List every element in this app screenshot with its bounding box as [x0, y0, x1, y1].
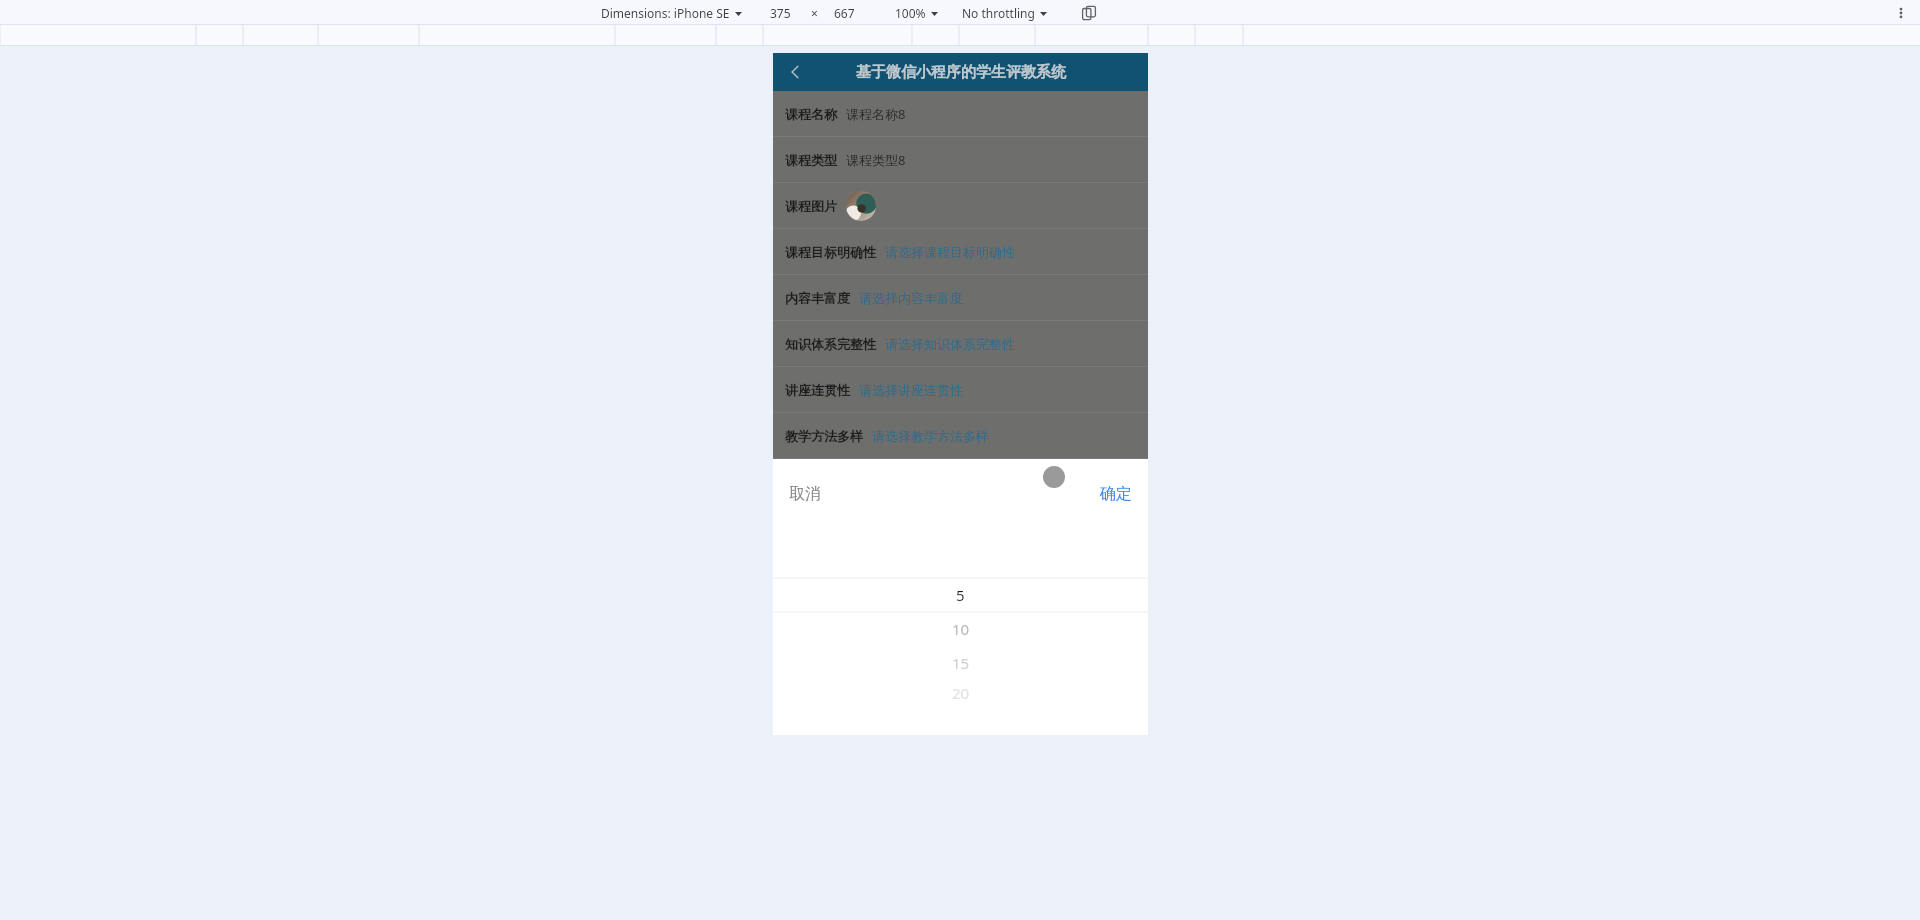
button[interactable]: No throttling — [962, 5, 1047, 21]
staticText: 请选择课程目标明确性 — [885, 244, 1015, 260]
button[interactable]: 课程图片 — [773, 183, 1148, 229]
button[interactable]: 课程类型 — [773, 137, 1148, 183]
staticText: 课程目标明确性 — [785, 244, 876, 260]
staticText: 100% — [895, 5, 926, 21]
button[interactable]: 确定 — [1090, 476, 1142, 512]
button[interactable]: More options — [1890, 2, 1912, 24]
button[interactable]: 教学方法多样 — [773, 413, 1148, 459]
button[interactable]: 知识体系完整性 — [773, 321, 1148, 367]
staticText: 请选择知识体系完整性 — [885, 336, 1015, 352]
staticText: 20 — [952, 683, 970, 703]
button[interactable]: 100% — [895, 5, 938, 21]
staticText: 667 — [834, 5, 855, 21]
staticText: 请选择教学方法多样 — [872, 428, 989, 444]
staticText: 确定 — [1100, 484, 1132, 504]
staticText: 课程类型8 — [846, 151, 906, 169]
button[interactable]: 内容丰富度 — [773, 275, 1148, 321]
staticText: 请选择内容丰富度 — [859, 290, 963, 306]
staticText: 讲座连贯性 — [785, 382, 850, 398]
button[interactable]: 取消 — [779, 476, 831, 512]
button[interactable]: Dimensions: iPhone SE — [601, 5, 742, 21]
staticText: 课程名称 — [785, 106, 837, 122]
staticText: × — [811, 5, 818, 21]
button[interactable]: 课程名称 — [773, 91, 1148, 137]
staticText: 内容丰富度 — [785, 290, 850, 306]
button[interactable]: Rotate device — [1077, 1, 1101, 25]
button[interactable]: Back — [773, 53, 817, 91]
staticText: 取消 — [789, 484, 821, 504]
staticText: 课程图片 — [785, 198, 837, 214]
staticText: 课程名称8 — [846, 105, 906, 123]
staticText: 课程类型 — [785, 152, 837, 168]
staticText: 15 — [952, 653, 970, 673]
staticText: Dimensions: iPhone SE — [601, 5, 730, 21]
staticText: No throttling — [962, 5, 1035, 21]
staticText: 教学方法多样 — [785, 428, 863, 444]
staticText: 请选择讲座连贯性 — [859, 382, 963, 398]
staticText: 5 — [956, 585, 965, 605]
staticText: 10 — [952, 619, 970, 639]
staticText: 知识体系完整性 — [785, 336, 876, 352]
staticText: 375 — [770, 5, 791, 21]
button[interactable]: 课程目标明确性 — [773, 229, 1148, 275]
button[interactable]: 讲座连贯性 — [773, 367, 1148, 413]
staticText: 基于微信小程序的学生评教系统 — [856, 63, 1066, 82]
